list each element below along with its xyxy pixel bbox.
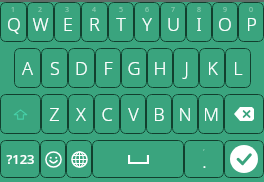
button[interactable]: . xyxy=(184,140,224,178)
button[interactable]: J xyxy=(173,48,199,88)
button[interactable]: Z xyxy=(41,94,68,134)
button[interactable]: Change language xyxy=(66,140,92,178)
button[interactable]: G xyxy=(121,48,147,88)
staticText: A xyxy=(22,56,33,81)
staticText: D xyxy=(75,56,88,81)
staticText: M xyxy=(203,102,219,127)
button[interactable]: K xyxy=(199,48,225,88)
staticText: U xyxy=(167,12,180,37)
staticText: Y xyxy=(142,12,152,37)
staticText: 7 xyxy=(171,5,176,15)
button[interactable]: T xyxy=(108,2,134,42)
button[interactable]: C xyxy=(94,94,120,134)
button[interactable]: Q xyxy=(0,2,27,42)
button[interactable]: P xyxy=(238,2,264,42)
staticText: V xyxy=(128,102,139,127)
staticText: 9 xyxy=(223,5,228,15)
button[interactable]: H xyxy=(147,48,173,88)
staticText: K xyxy=(207,56,218,81)
button[interactable]: Y xyxy=(134,2,160,42)
staticText: G xyxy=(127,56,141,81)
staticText: 8 xyxy=(197,5,202,15)
button[interactable]: O xyxy=(212,2,238,42)
staticText: Z xyxy=(49,102,60,127)
staticText: 2 xyxy=(38,5,43,15)
staticText: X xyxy=(76,102,86,127)
staticText: . xyxy=(202,149,207,174)
button[interactable]: A xyxy=(14,48,41,88)
staticText: 4 xyxy=(92,5,97,15)
button[interactable]: F xyxy=(95,48,121,88)
staticText: S xyxy=(50,56,60,81)
staticText: P xyxy=(246,12,257,37)
staticText: I xyxy=(196,12,202,37)
button[interactable]: S xyxy=(41,48,68,88)
button[interactable]: Shift xyxy=(0,94,41,134)
button[interactable]: B xyxy=(146,94,172,134)
staticText: 1 xyxy=(11,5,16,15)
button[interactable]: L xyxy=(225,48,251,88)
staticText: O xyxy=(218,12,232,37)
button[interactable]: D xyxy=(68,48,95,88)
button[interactable]: V xyxy=(120,94,146,134)
staticText: 3 xyxy=(65,5,70,15)
button[interactable]: X xyxy=(68,94,94,134)
staticText: N xyxy=(178,102,192,127)
staticText: E xyxy=(63,12,73,37)
staticText: L xyxy=(233,56,243,81)
staticText: F xyxy=(103,56,113,81)
staticText: Q xyxy=(7,12,21,37)
button[interactable]: Backspace xyxy=(224,94,264,134)
button[interactable]: Enter xyxy=(224,140,264,178)
button[interactable]: N xyxy=(172,94,198,134)
button[interactable]: Emoji xyxy=(40,140,66,178)
staticText: 0 xyxy=(249,5,254,15)
staticText: C xyxy=(101,102,113,127)
staticText: , xyxy=(203,143,205,153)
button[interactable]: I xyxy=(186,2,212,42)
button[interactable]: W xyxy=(27,2,54,42)
button[interactable]: U xyxy=(160,2,186,42)
staticText: ?123 xyxy=(6,150,35,168)
button[interactable]: R xyxy=(81,2,108,42)
staticText: B xyxy=(153,102,165,127)
staticText: W xyxy=(32,12,49,37)
staticText: H xyxy=(153,56,167,81)
staticText: 5 xyxy=(119,5,124,15)
staticText: R xyxy=(89,12,100,37)
button[interactable]: ?123 xyxy=(0,140,40,178)
staticText: T xyxy=(116,12,126,37)
button[interactable]: E xyxy=(54,2,81,42)
button[interactable]: Space xyxy=(92,140,184,178)
staticText: 6 xyxy=(145,5,150,15)
button[interactable]: M xyxy=(198,94,224,134)
staticText: J xyxy=(184,56,189,81)
